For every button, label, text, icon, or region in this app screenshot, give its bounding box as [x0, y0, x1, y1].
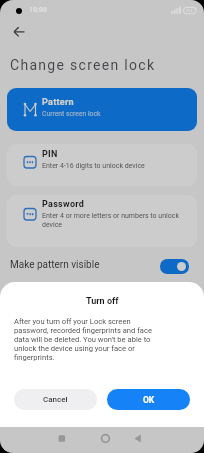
- button[interactable]: OK: [107, 389, 190, 410]
- staticText: Turn off: [86, 296, 119, 307]
- button[interactable]: PIN: [7, 144, 197, 186]
- staticText: Current screen lock: [42, 110, 101, 118]
- staticText: Make pattern visible: [10, 259, 100, 271]
- staticText: OK: [143, 395, 155, 405]
- button[interactable]: [160, 259, 189, 274]
- staticText: Enter 4 or more letters or numbers to un…: [42, 212, 179, 229]
- button[interactable]: Cancel: [14, 389, 97, 410]
- staticText: After you turn off your Lock screen pass…: [14, 317, 152, 362]
- button[interactable]: [8, 21, 30, 43]
- button[interactable]: Make pattern visible: [0, 252, 204, 278]
- button[interactable]: Pattern: [7, 88, 197, 131]
- button[interactable]: Password: [7, 195, 197, 247]
- staticText: 10:00: [29, 6, 48, 14]
- staticText: Enter 4-16 digits to unlock device: [42, 162, 145, 170]
- staticText: Password: [42, 199, 85, 210]
- button[interactable]: [47, 427, 77, 453]
- button[interactable]: [126, 427, 156, 453]
- staticText: Pattern: [42, 97, 74, 108]
- button[interactable]: [90, 427, 120, 453]
- staticText: Cancel: [43, 395, 68, 404]
- staticText: PIN: [42, 149, 58, 160]
- staticText: Change screen lock: [10, 57, 156, 73]
